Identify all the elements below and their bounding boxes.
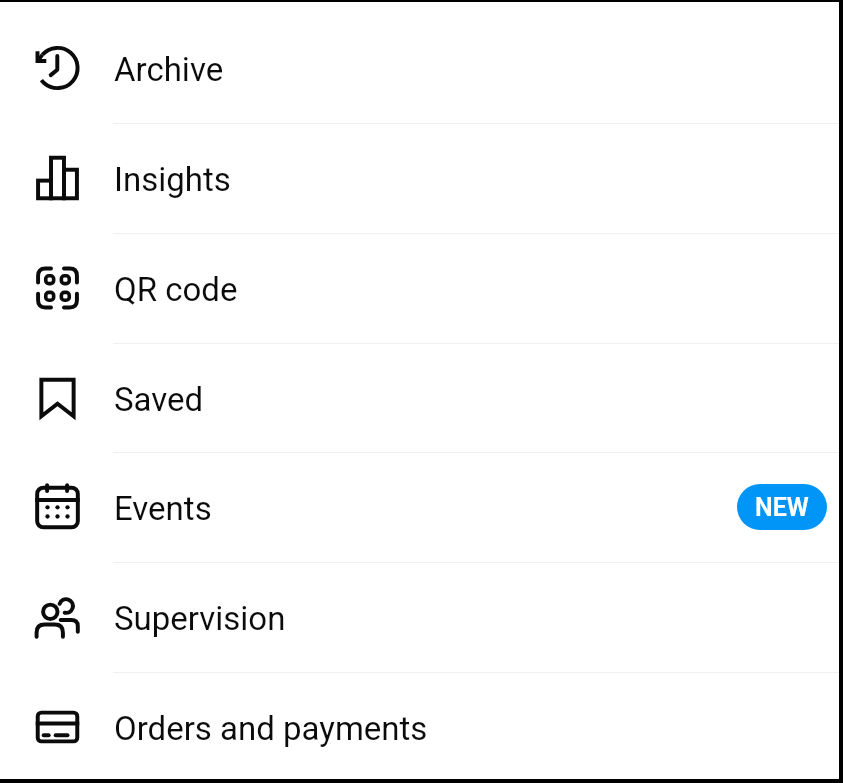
staticText: Events bbox=[114, 489, 212, 528]
other: Supervision bbox=[0, 562, 843, 672]
staticText: QR code bbox=[114, 270, 238, 309]
other: Insights bbox=[0, 123, 843, 233]
staticText: NEW bbox=[755, 493, 809, 522]
button[interactable]: Events bbox=[0, 452, 843, 562]
button[interactable]: Insights bbox=[0, 123, 843, 233]
button[interactable]: Orders and payments bbox=[0, 672, 843, 782]
staticText: Archive bbox=[114, 50, 224, 89]
other: Saved bbox=[0, 343, 843, 453]
staticText: Insights bbox=[114, 160, 231, 199]
other: QR code bbox=[0, 233, 843, 343]
other: Archive bbox=[0, 13, 843, 123]
other: Orders and payments bbox=[0, 672, 843, 782]
button[interactable]: Supervision bbox=[0, 562, 843, 672]
staticText: Saved bbox=[114, 380, 204, 419]
other: Events bbox=[0, 452, 843, 562]
staticText: Supervision bbox=[114, 599, 286, 638]
button[interactable]: QR code bbox=[0, 233, 843, 343]
button[interactable]: Saved bbox=[0, 343, 843, 453]
button[interactable]: Archive bbox=[0, 13, 843, 123]
staticText: Orders and payments bbox=[114, 709, 428, 748]
